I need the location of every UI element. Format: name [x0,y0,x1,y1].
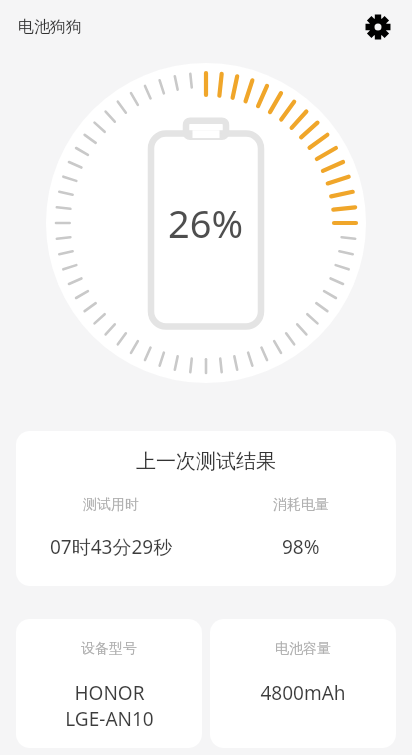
staticText: 07时43分29秒 [50,534,173,560]
staticText: 电池狗狗 [18,17,82,37]
button[interactable]: Settings [358,7,398,47]
staticText: 4800mAh [260,680,346,706]
button[interactable]: 电池容量 [210,619,396,748]
button[interactable]: 上一次测试结果 [16,431,396,586]
staticText: 设备型号 [81,640,137,658]
staticText: 测试用时 [83,496,139,514]
staticText: 消耗电量 [273,496,329,514]
button[interactable]: 设备型号 [16,619,202,748]
staticText: 26% [168,197,244,249]
staticText: 电池容量 [275,640,331,658]
staticText: HONOR LGE-AN10 [65,680,154,732]
staticText: 上一次测试结果 [136,449,276,474]
staticText: 98% [282,534,320,560]
